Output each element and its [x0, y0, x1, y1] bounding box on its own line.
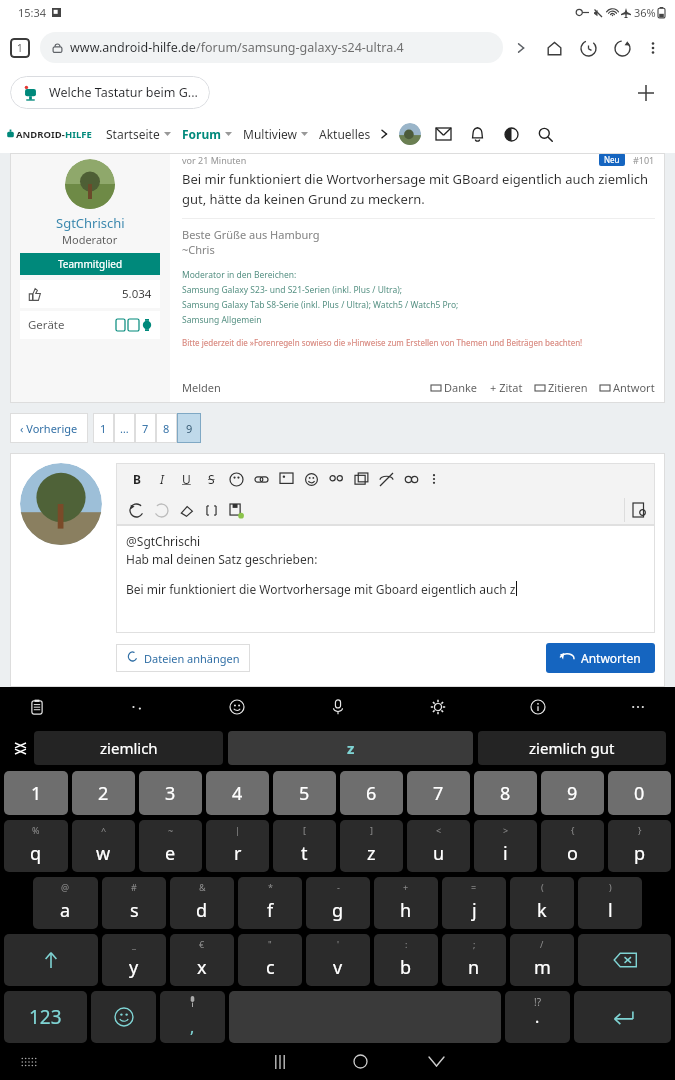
- button[interactable]: B: [124, 466, 149, 492]
- button[interactable]: &: [170, 877, 234, 929]
- button[interactable]: Keyboard option 2: [122, 692, 152, 722]
- button[interactable]: SgtChrischi: [56, 214, 125, 232]
- button[interactable]: Keyboard option 6: [523, 692, 553, 722]
- button[interactable]: Alerts: [465, 122, 489, 146]
- button[interactable]: ]: [340, 820, 403, 872]
- button[interactable]: Editor tool 7: [374, 466, 399, 492]
- button[interactable]: Melden: [182, 380, 221, 395]
- button[interactable]: €: [170, 934, 234, 986]
- button[interactable]: Keyboard option 4: [323, 692, 353, 722]
- button[interactable]: Danke: [431, 380, 478, 395]
- button[interactable]: Editor action 3: [174, 497, 199, 523]
- button[interactable]: 9: [177, 413, 201, 443]
- button[interactable]: 1: [4, 771, 68, 815]
- button[interactable]: Startseite: [106, 126, 171, 142]
- button[interactable]: More nav: [375, 125, 393, 143]
- button[interactable]: Keyboard switch: [16, 1049, 42, 1075]
- button[interactable]: Aktuelles: [319, 126, 371, 142]
- button[interactable]: Messages: [431, 122, 455, 146]
- button[interactable]: *: [238, 877, 302, 929]
- button[interactable]: Editor tool 5: [324, 466, 349, 492]
- button[interactable]: #: [102, 877, 166, 929]
- button[interactable]: Editor action 5: [224, 497, 249, 523]
- button[interactable]: ': [306, 934, 370, 986]
- button[interactable]: @SgtChrischi: [116, 525, 655, 633]
- button[interactable]: [: [273, 820, 336, 872]
- button[interactable]: More options: [641, 36, 665, 60]
- button[interactable]: Editor tool 3: [274, 466, 299, 492]
- button[interactable]: 123: [4, 991, 87, 1043]
- button[interactable]: + Zitat: [490, 380, 523, 395]
- button[interactable]: ~: [139, 820, 202, 872]
- button[interactable]: 6: [340, 771, 403, 815]
- button[interactable]: ): [578, 877, 642, 929]
- button[interactable]: z: [228, 731, 473, 765]
- button[interactable]: Multiview: [243, 126, 308, 142]
- button[interactable]: More: [424, 469, 444, 489]
- button[interactable]: :: [374, 934, 438, 986]
- button[interactable]: Preview: [625, 495, 655, 525]
- button[interactable]: ^: [72, 820, 135, 872]
- button[interactable]: …: [114, 413, 135, 443]
- button[interactable]: ": [238, 934, 302, 986]
- button[interactable]: Profile: [399, 123, 421, 145]
- button[interactable]: Editor tool 1: [224, 466, 249, 492]
- button[interactable]: +: [374, 877, 438, 929]
- button[interactable]: Editor action 4: [199, 497, 224, 523]
- button[interactable]: %: [4, 820, 68, 872]
- button[interactable]: Welche Tastatur beim G...: [10, 76, 210, 109]
- button[interactable]: Antworten: [546, 643, 655, 673]
- button[interactable]: 5: [273, 771, 336, 815]
- button[interactable]: Dark mode: [499, 122, 523, 146]
- button[interactable]: >: [474, 820, 537, 872]
- button[interactable]: 4: [206, 771, 269, 815]
- button[interactable]: Keyboard option 5: [423, 692, 453, 722]
- button[interactable]: 9: [541, 771, 604, 815]
- button[interactable]: Editor tool 6: [349, 466, 374, 492]
- button[interactable]: (: [510, 877, 574, 929]
- button[interactable]: Forward: [509, 36, 533, 60]
- button[interactable]: |: [206, 820, 269, 872]
- button[interactable]: S: [199, 466, 224, 492]
- button[interactable]: Editor tool 2: [249, 466, 274, 492]
- button[interactable]: Keyboard option 7: [623, 692, 653, 722]
- button[interactable]: Teammitglied: [20, 253, 160, 275]
- button[interactable]: 0: [608, 771, 671, 815]
- button[interactable]: Avatar: [65, 159, 115, 209]
- button[interactable]: Reload: [609, 35, 635, 61]
- button[interactable]: Editor action 2: [149, 497, 174, 523]
- button[interactable]: 3: [139, 771, 202, 815]
- button[interactable]: Tabs: [10, 38, 30, 58]
- button[interactable]: U: [174, 466, 199, 492]
- button[interactable]: Your avatar: [20, 463, 102, 545]
- button[interactable]: }: [608, 820, 671, 872]
- button[interactable]: Neu: [604, 154, 620, 165]
- button[interactable]: History: [575, 35, 601, 61]
- button[interactable]: Search: [533, 122, 557, 146]
- button[interactable]: Keyboard option 3: [222, 692, 252, 722]
- button[interactable]: Comma and voice input: [160, 991, 225, 1043]
- button[interactable]: 7: [135, 413, 156, 443]
- button[interactable]: Antwort: [600, 380, 655, 395]
- button[interactable]: ;: [442, 934, 506, 986]
- button[interactable]: Enter: [574, 991, 671, 1043]
- button[interactable]: Period: [505, 991, 570, 1043]
- button[interactable]: Shift: [4, 934, 98, 986]
- button[interactable]: _: [102, 934, 166, 986]
- button[interactable]: Collapse suggestions: [6, 734, 34, 762]
- button[interactable]: I: [149, 466, 174, 492]
- button[interactable]: Home: [340, 1043, 380, 1080]
- button[interactable]: <: [407, 820, 470, 872]
- button[interactable]: 8: [474, 771, 537, 815]
- button[interactable]: ziemlich: [34, 731, 223, 765]
- button[interactable]: Editor action 1: [124, 497, 149, 523]
- button[interactable]: -: [306, 877, 370, 929]
- button[interactable]: Backspace: [578, 934, 671, 986]
- button[interactable]: 1: [93, 413, 114, 443]
- button[interactable]: Zitieren: [535, 380, 588, 395]
- button[interactable]: Back: [416, 1043, 456, 1080]
- button[interactable]: Editor tool 4: [299, 466, 324, 492]
- button[interactable]: Emoji: [91, 991, 156, 1043]
- button[interactable]: @: [33, 877, 98, 929]
